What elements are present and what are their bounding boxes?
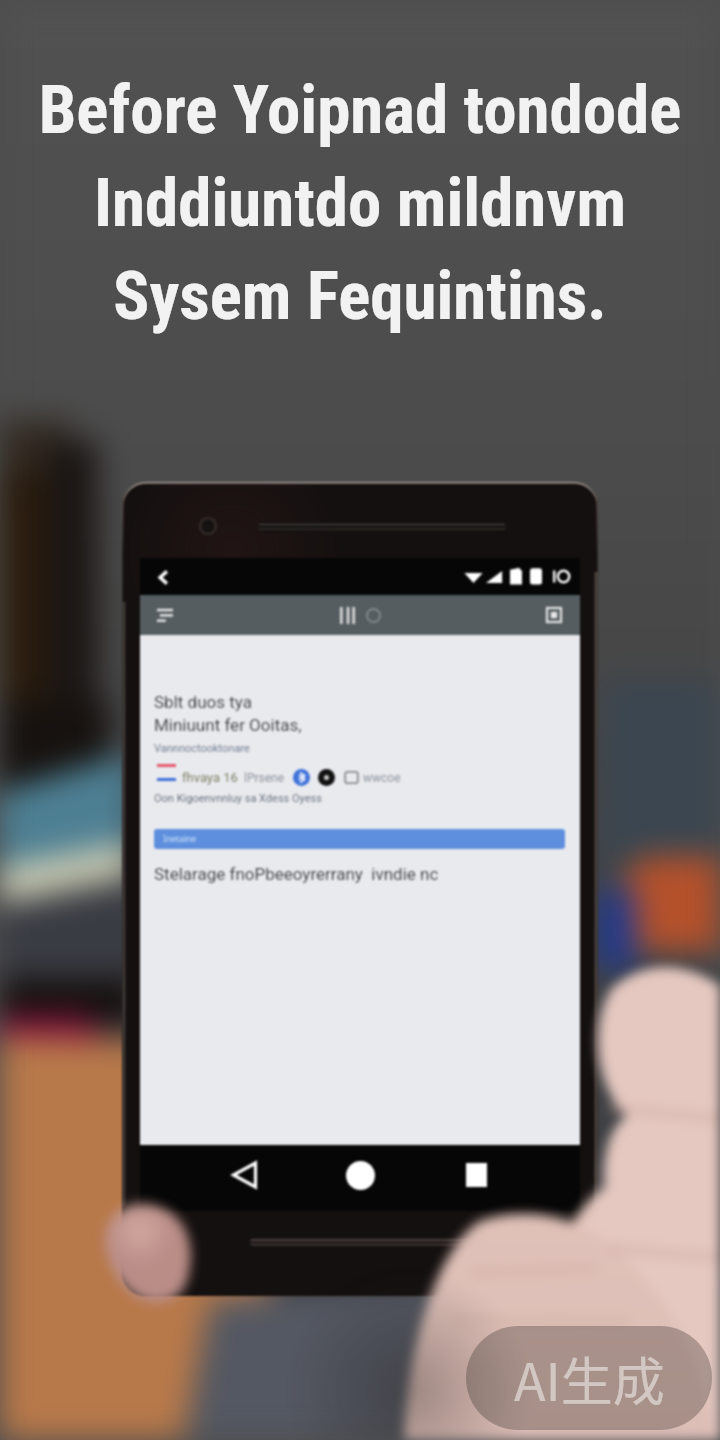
staticText: AI生成 <box>514 1341 665 1416</box>
button[interactable]: Back <box>148 562 178 592</box>
staticText: Vannnoctooktonare <box>154 742 250 755</box>
button[interactable]: Bluetooth <box>293 769 310 786</box>
staticText: Stelarage fnoPbeeoyrerrany ivndie nc <box>154 864 439 884</box>
staticText: lPrsene <box>244 771 285 785</box>
staticText: Sysem Fequintins. <box>0 257 720 336</box>
staticText: Inddiuntdo mildnvm <box>0 164 720 243</box>
button[interactable]: Settings <box>318 769 335 786</box>
button[interactable]: Home <box>302 1158 418 1192</box>
staticText: Miniuunt fer Ooitas, <box>154 715 302 735</box>
staticText: fhvaya 16 <box>182 770 238 785</box>
button[interactable]: Preview <box>542 603 566 627</box>
button[interactable]: Inetaine <box>154 829 565 849</box>
staticText: Sblt duos tya <box>154 692 252 712</box>
button[interactable]: Menu <box>152 602 178 628</box>
button[interactable]: Back <box>186 1158 302 1192</box>
staticText: Before Yoipnad tondode <box>0 71 720 150</box>
button[interactable]: Recents <box>418 1158 534 1192</box>
staticText: Inetaine <box>163 833 197 845</box>
staticText: Oon Kigoenvnnluy sa Xdess Oyess <box>154 792 322 805</box>
staticText: wwcoe <box>363 771 401 785</box>
